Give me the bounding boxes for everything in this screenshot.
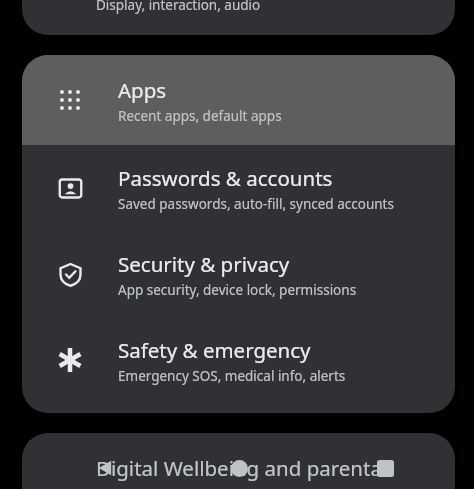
staticText: Digital Wellbeing and parental [96,454,388,482]
button[interactable]: Home [212,447,266,489]
button[interactable]: Security & privacy [22,231,455,317]
button[interactable]: Safety & emergency [22,317,455,403]
button[interactable]: Display, interaction, audio [22,0,455,35]
button[interactable]: Digital Wellbeing and parental [22,433,455,489]
staticText: Emergency SOS, medical info, alerts [118,367,346,385]
staticText: Passwords & accounts [118,164,333,192]
staticText: Apps [118,76,167,104]
staticText: Security & privacy [118,250,290,278]
button[interactable]: Passwords & accounts [22,145,455,231]
button[interactable]: Apps [22,55,455,145]
staticText: App security, device lock, permissions [118,281,357,299]
button[interactable]: Recent apps [358,447,412,489]
button[interactable]: Back [78,447,132,489]
staticText: Display, interaction, audio [96,0,261,14]
staticText: Saved passwords, auto-fill, synced accou… [118,195,394,213]
staticText: Recent apps, default apps [118,107,282,125]
staticText: Safety & emergency [118,336,311,364]
